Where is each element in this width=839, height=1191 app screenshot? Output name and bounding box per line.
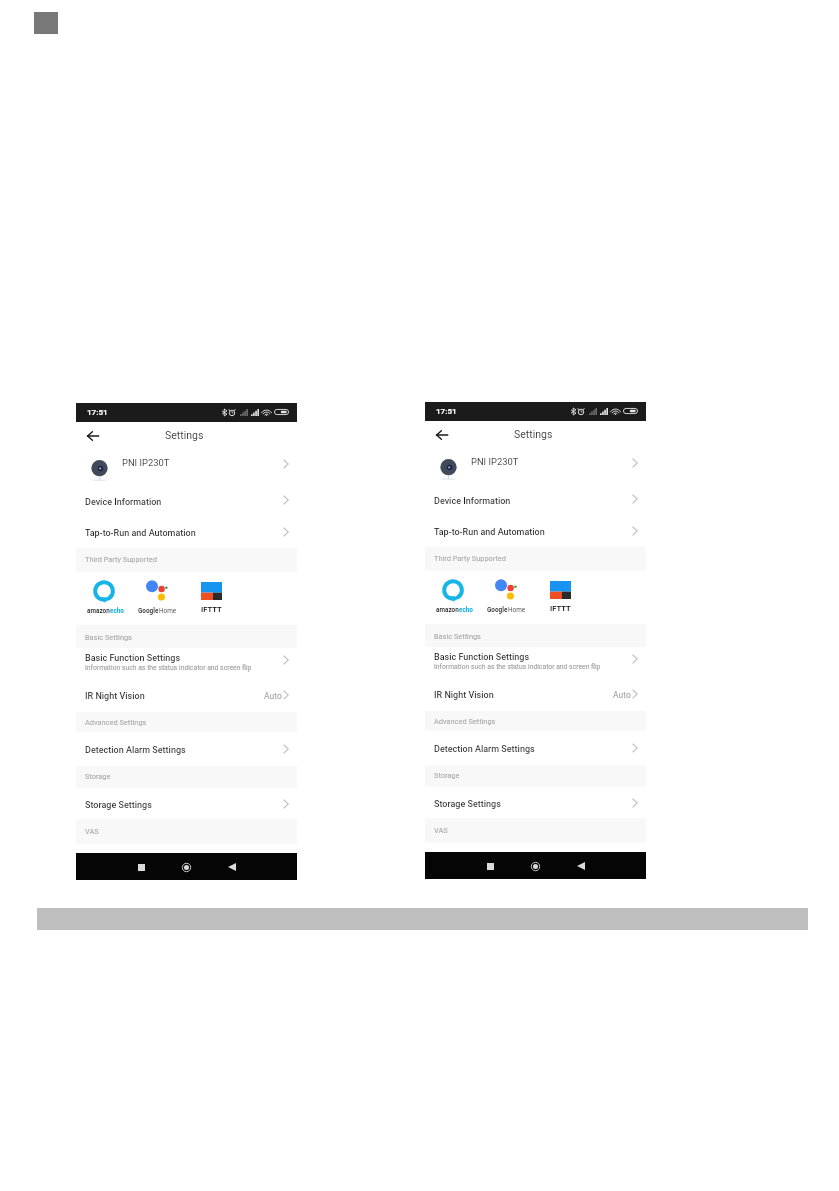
staticText: Auto (264, 691, 282, 701)
staticText: Storage Settings (434, 799, 501, 810)
button[interactable]: PNI IP230T (76, 450, 297, 486)
staticText: Auto (613, 690, 631, 700)
staticText: IR Night Vision (434, 690, 494, 701)
staticText: Settings (514, 428, 553, 440)
button[interactable]: Back (84, 427, 102, 445)
staticText: Device Information (434, 496, 511, 507)
staticText: Detection Alarm Settings (85, 745, 186, 756)
button[interactable]: Detection Alarm Settings (76, 734, 297, 766)
staticText: Advanced Settings (85, 718, 147, 727)
button[interactable]: IR Night Vision (425, 681, 646, 708)
button[interactable]: IR Night Vision (76, 682, 297, 709)
staticText: Basic Settings (85, 633, 132, 642)
button[interactable]: Home (523, 854, 547, 878)
staticText: Google (487, 606, 508, 614)
button[interactable]: Google (481, 574, 529, 624)
staticText: VAS (85, 827, 99, 836)
staticText: Home (159, 607, 177, 615)
button[interactable]: IFTTT (536, 574, 584, 624)
staticText: Tap-to-Run and Automation (434, 527, 545, 538)
button[interactable]: Storage Settings (76, 788, 297, 819)
button[interactable]: Tap-to-Run and Automation (425, 517, 646, 542)
button[interactable]: Back (569, 854, 593, 878)
button[interactable]: Device Information (76, 488, 297, 518)
staticText: amazon (87, 607, 110, 615)
staticText: Information such as the status indicator… (434, 663, 601, 671)
button[interactable]: amazon (428, 574, 476, 624)
staticText: Tap-to-Run and Automation (85, 528, 196, 539)
staticText: Storage (85, 772, 111, 781)
button[interactable]: Tap-to-Run and Automation (76, 518, 297, 543)
button[interactable]: Home (174, 855, 198, 879)
staticText: IR Night Vision (85, 691, 145, 702)
button[interactable]: Back (433, 426, 451, 444)
button[interactable]: Recent apps (478, 854, 502, 878)
staticText: 17:51 (87, 408, 108, 417)
staticText: echo (459, 606, 473, 614)
staticText: Basic Settings (434, 632, 481, 641)
staticText: Basic Function Settings (434, 652, 530, 663)
staticText: Home (508, 606, 526, 614)
button[interactable]: Basic Function Settings (425, 641, 646, 681)
staticText: VAS (434, 826, 448, 835)
staticText: Information such as the status indicator… (85, 664, 252, 672)
staticText: Storage Settings (85, 800, 152, 811)
staticText: Device Information (85, 497, 162, 508)
staticText: Settings (165, 429, 204, 441)
button[interactable]: amazon (79, 575, 127, 625)
staticText: PNI IP230T (471, 456, 519, 467)
button[interactable]: Device Information (425, 487, 646, 517)
staticText: Google (138, 607, 159, 615)
staticText: IFTTT (201, 605, 222, 614)
staticText: Advanced Settings (434, 717, 496, 726)
button[interactable]: Back (220, 855, 244, 879)
button[interactable]: Recent apps (129, 855, 153, 879)
staticText: amazon (436, 606, 459, 614)
staticText: PNI IP230T (122, 457, 170, 468)
button[interactable]: IFTTT (187, 575, 235, 625)
staticText: Third Party Supported (85, 555, 157, 564)
staticText: Basic Function Settings (85, 653, 181, 664)
staticText: Storage (434, 771, 460, 780)
staticText: Third Party Supported (434, 554, 506, 563)
staticText: IFTTT (550, 604, 571, 613)
button[interactable]: PNI IP230T (425, 449, 646, 485)
button[interactable]: Storage Settings (425, 787, 646, 818)
button[interactable]: Google (132, 575, 180, 625)
staticText: Detection Alarm Settings (434, 744, 535, 755)
staticText: 17:51 (436, 407, 457, 416)
button[interactable]: Basic Function Settings (76, 642, 297, 682)
staticText: echo (110, 607, 124, 615)
button[interactable]: Detection Alarm Settings (425, 733, 646, 765)
